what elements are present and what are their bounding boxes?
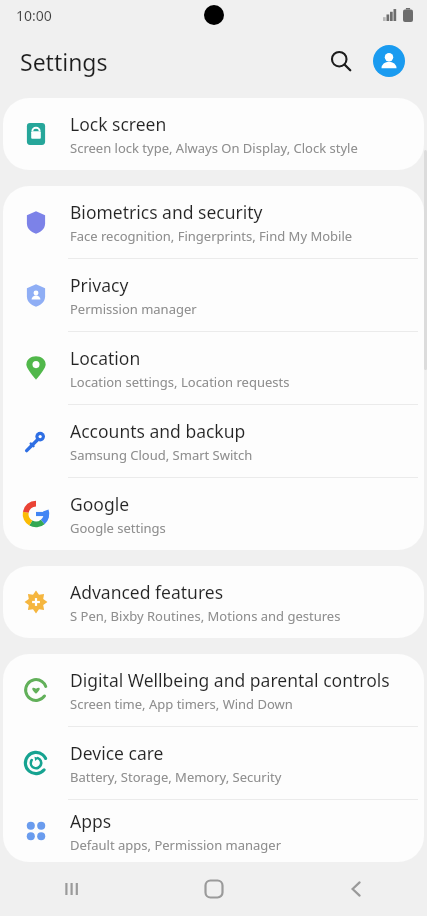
staticText: Digital Wellbeing and parental controls (70, 668, 390, 692)
button[interactable]: Home (143, 862, 285, 916)
button[interactable]: Digital Wellbeing and parental controls (3, 654, 424, 726)
staticText: Lock screen (70, 112, 167, 136)
staticText: Face recognition, Fingerprints, Find My … (70, 227, 353, 245)
staticText: Battery, Storage, Memory, Security (70, 768, 282, 786)
staticText: Screen lock type, Always On Display, Clo… (70, 139, 358, 157)
staticText: 10:00 (16, 6, 52, 25)
staticText: Location (70, 346, 141, 370)
staticText: Device care (70, 741, 164, 765)
staticText: S Pen, Bixby Routines, Motions and gestu… (70, 607, 341, 625)
button[interactable]: Accounts and backup (3, 405, 424, 477)
staticText: Google settings (70, 519, 166, 537)
button[interactable]: Advanced features (3, 566, 424, 638)
button[interactable]: Biometrics and security (3, 186, 424, 258)
button[interactable]: Privacy (3, 259, 424, 331)
button[interactable]: Back (285, 862, 427, 916)
staticText: Default apps, Permission manager (70, 836, 282, 854)
staticText: Location settings, Location requests (70, 373, 290, 391)
button[interactable]: Device care (3, 727, 424, 799)
staticText: Accounts and backup (70, 419, 246, 443)
staticText: Advanced features (70, 580, 224, 604)
staticText: Permission manager (70, 300, 197, 318)
staticText: Settings (20, 46, 108, 77)
button[interactable]: Location (3, 332, 424, 404)
button[interactable]: Search (319, 39, 363, 83)
staticText: Apps (70, 809, 112, 833)
button[interactable]: Apps (3, 800, 424, 862)
staticText: Screen time, App timers, Wind Down (70, 695, 293, 713)
staticText: Biometrics and security (70, 200, 263, 224)
staticText: Privacy (70, 273, 129, 297)
button[interactable]: Recents (0, 862, 143, 916)
button[interactable]: Google (3, 478, 424, 550)
staticText: Google (70, 492, 130, 516)
button[interactable]: Lock screen (3, 98, 424, 170)
staticText: Samsung Cloud, Smart Switch (70, 446, 253, 464)
button[interactable]: Account (367, 39, 411, 83)
